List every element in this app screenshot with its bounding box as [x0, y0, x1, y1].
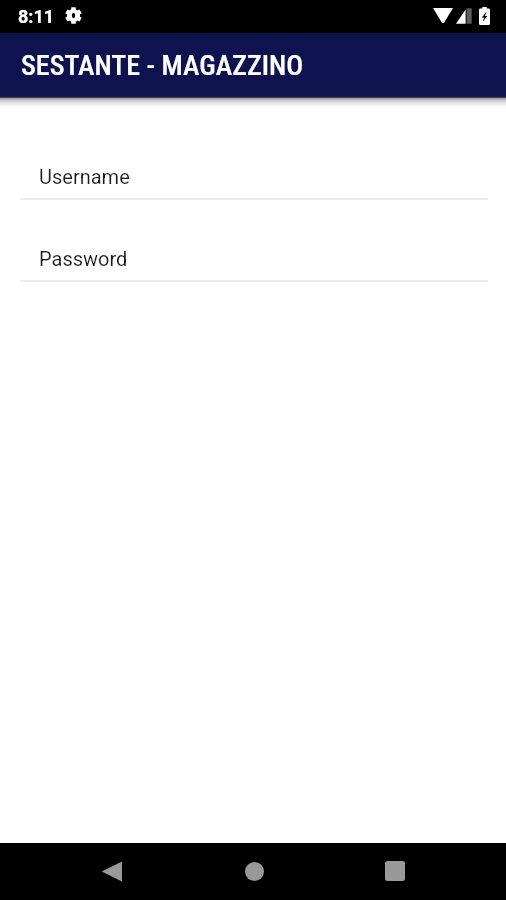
button[interactable]: Back — [84, 844, 140, 900]
staticText: 8:11 — [18, 6, 55, 27]
staticText: Username — [39, 165, 130, 188]
button[interactable]: Recent apps — [367, 844, 423, 900]
staticText: Password — [39, 247, 128, 270]
button[interactable]: SESTANTE - MAGAZZINO — [0, 33, 506, 96]
button[interactable]: Home — [226, 844, 282, 900]
other: Settings — [65, 7, 82, 24]
button[interactable]: Password — [20, 247, 488, 282]
staticText: SESTANTE - MAGAZZINO — [21, 49, 304, 82]
button[interactable]: Username — [20, 165, 488, 200]
